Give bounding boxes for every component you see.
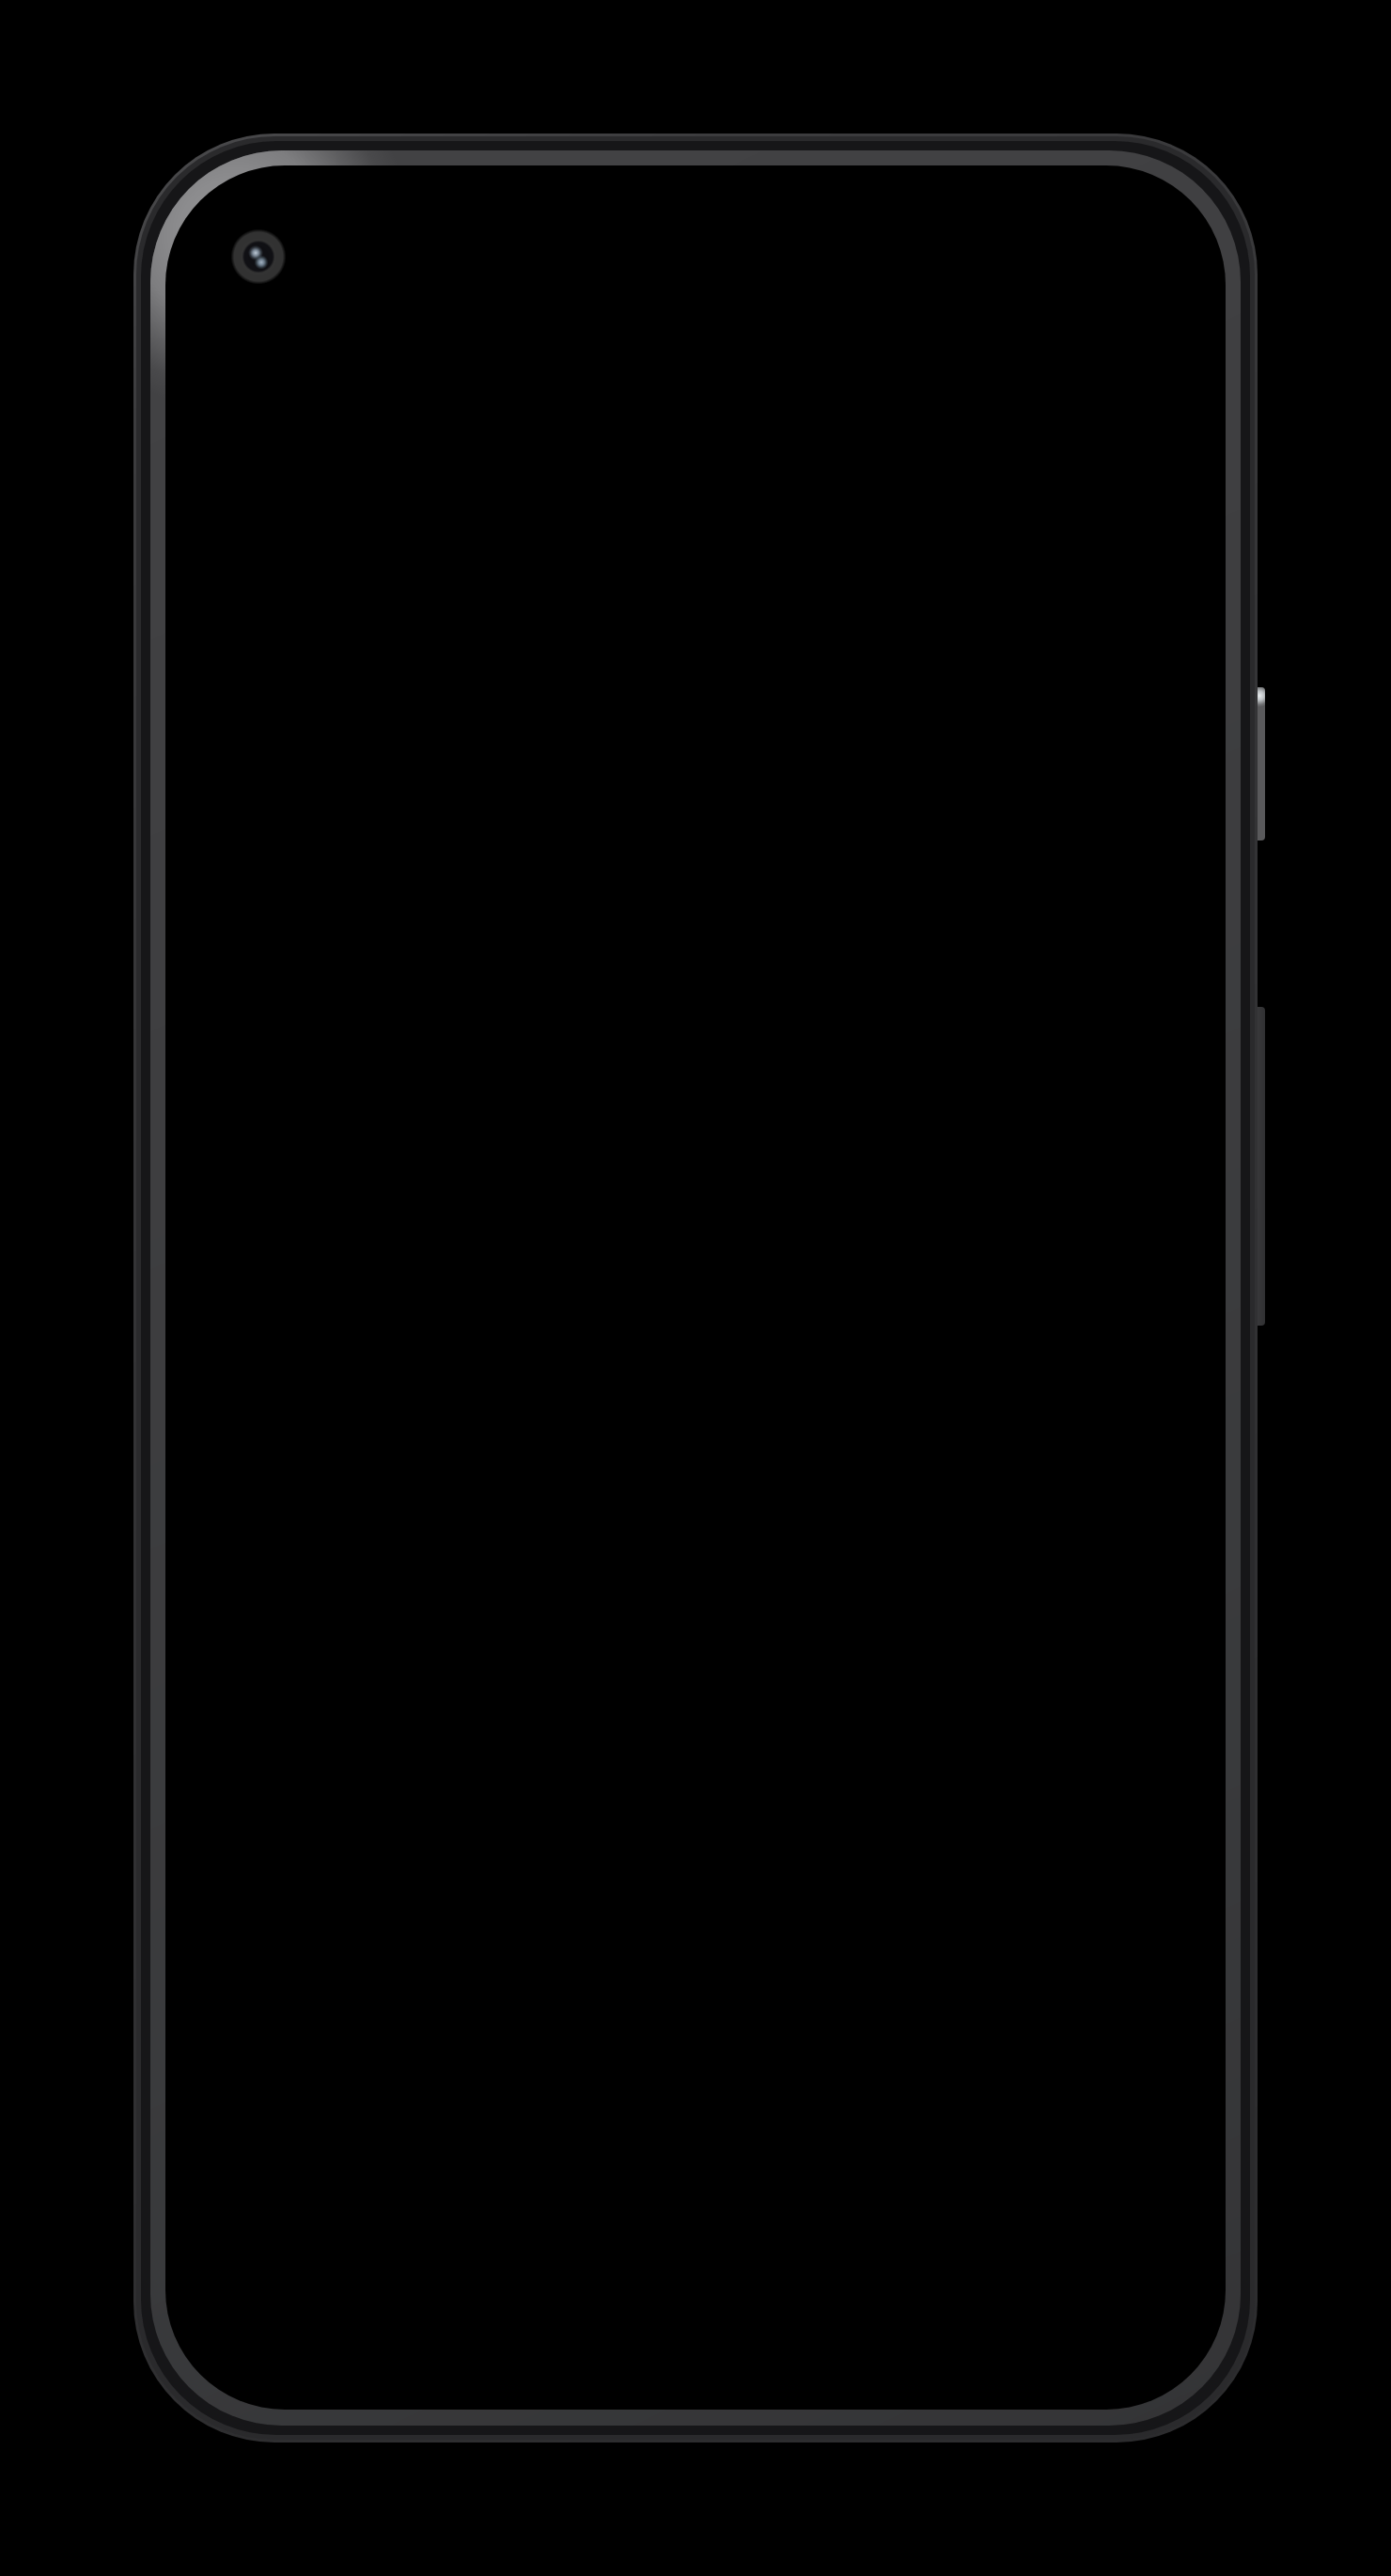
button[interactable]: Power button xyxy=(1245,687,1265,840)
button[interactable]: Volume buttons xyxy=(1245,1007,1265,1326)
button[interactable]: Phone display xyxy=(165,165,1226,2410)
